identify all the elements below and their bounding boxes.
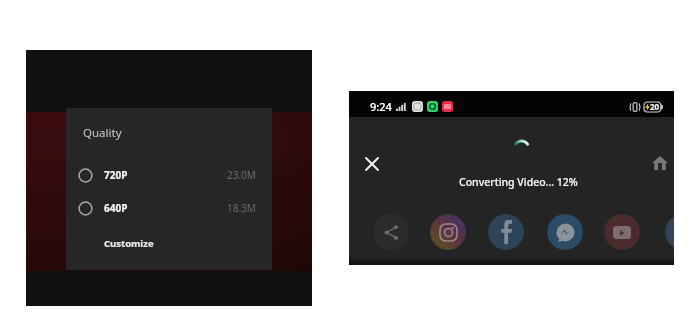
staticText: 20 [650,101,660,112]
button[interactable]: Share [373,214,409,250]
staticText: Customize [104,237,154,250]
button[interactable]: Customize [66,231,272,255]
button[interactable]: Instagram [430,214,466,250]
button[interactable]: Messenger [547,214,583,250]
staticText: 18.3M [227,201,256,215]
button[interactable]: 720P [66,163,272,187]
button[interactable]: Facebook [488,214,524,250]
button[interactable]: YouTube [604,214,640,250]
button[interactable]: Home [649,152,671,174]
staticText: 23.0M [227,168,256,182]
button[interactable]: More [665,214,674,250]
button[interactable]: Close [361,153,383,175]
staticText: Quality [83,125,122,141]
staticText: 720P [104,168,128,182]
staticText: Converting Video… 12% [459,175,578,189]
staticText: 9:24 [370,99,392,114]
staticText: 640P [104,201,128,215]
button[interactable]: 640P [66,196,272,220]
